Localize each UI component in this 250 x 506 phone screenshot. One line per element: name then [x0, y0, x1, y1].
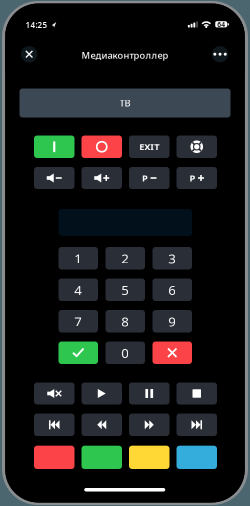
button[interactable]: Menu	[176, 135, 217, 158]
staticText: 14:25	[25, 19, 47, 30]
button[interactable]: EXIT	[129, 135, 169, 158]
staticText: 7	[74, 312, 82, 330]
button[interactable]: Stop	[176, 382, 217, 404]
staticText: EXIT	[139, 141, 159, 153]
button[interactable]: Volume down	[34, 167, 74, 189]
button[interactable]: Previous	[34, 413, 74, 436]
button[interactable]: Rewind	[81, 413, 122, 436]
button[interactable]: Next	[176, 413, 217, 436]
button[interactable]: Pause	[129, 382, 169, 404]
staticText: 3	[168, 249, 176, 267]
staticText: 64	[217, 20, 225, 29]
staticText: 1	[74, 249, 82, 267]
button[interactable]: 2	[105, 247, 145, 269]
button[interactable]: 9	[152, 310, 192, 332]
staticText: 9	[168, 312, 176, 330]
staticText: 2	[121, 249, 129, 267]
button[interactable]: Power off	[81, 135, 122, 158]
button[interactable]: More	[210, 44, 230, 64]
staticText: 5	[121, 281, 129, 299]
button[interactable]: 8	[105, 310, 145, 332]
button[interactable]: 3	[152, 247, 192, 269]
button[interactable]: Cancel	[152, 341, 192, 364]
button[interactable]: Power on	[34, 135, 74, 158]
button[interactable]: Next channel	[176, 167, 217, 189]
button[interactable]: Green	[81, 446, 122, 469]
staticText: 0	[121, 344, 129, 362]
button[interactable]: 0	[105, 341, 145, 364]
button[interactable]: Confirm	[58, 341, 98, 364]
button[interactable]: 6	[152, 278, 192, 301]
button[interactable]: Fast forward	[129, 413, 169, 436]
button[interactable]: Volume up	[81, 167, 122, 189]
staticText: P	[142, 172, 148, 184]
button[interactable]: Previous channel	[129, 167, 169, 189]
button[interactable]: 1	[58, 247, 98, 269]
staticText: ТВ	[119, 97, 130, 109]
button[interactable]: Blue	[176, 446, 217, 469]
button[interactable]: Play	[81, 382, 122, 404]
button[interactable]: 5	[105, 278, 145, 301]
button[interactable]: Mute	[34, 382, 74, 404]
staticText: P	[189, 172, 195, 184]
staticText: 6	[168, 281, 176, 299]
button[interactable]: 7	[58, 310, 98, 332]
button[interactable]: ТВ	[19, 88, 230, 117]
staticText: 4	[74, 281, 82, 299]
staticText: Медиаконтроллер	[81, 49, 168, 61]
button[interactable]: Red	[34, 446, 74, 469]
button[interactable]: 4	[58, 278, 98, 301]
staticText: 8	[121, 312, 129, 330]
button[interactable]: Close	[19, 44, 39, 64]
button[interactable]: Yellow	[129, 446, 169, 469]
